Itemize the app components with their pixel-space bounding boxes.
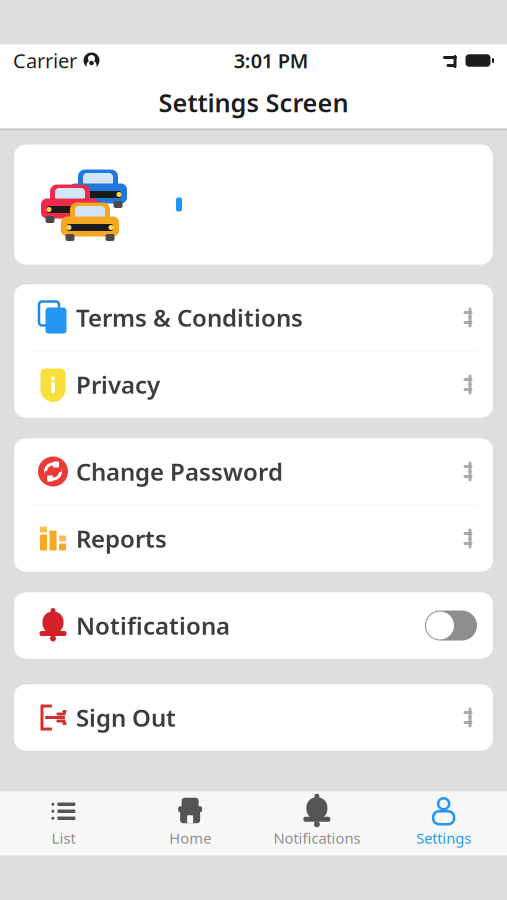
staticText: Home xyxy=(169,828,211,848)
button[interactable]: Terms & Conditions xyxy=(14,284,493,350)
button[interactable]: Privacy xyxy=(14,351,493,417)
staticText: List xyxy=(51,828,75,848)
button[interactable]: List xyxy=(0,792,127,854)
button[interactable]: Change Password xyxy=(14,438,493,504)
staticText: 3:01 PM xyxy=(234,47,309,74)
staticText: Reports xyxy=(76,523,167,554)
button[interactable]: Notificationa xyxy=(14,592,493,658)
button[interactable]: Home xyxy=(127,792,254,854)
button[interactable]: Notifications xyxy=(253,792,380,854)
staticText: Privacy xyxy=(76,369,160,400)
staticText: Settings xyxy=(416,828,471,848)
button[interactable]: Settings xyxy=(380,792,507,854)
staticText: Notificationa xyxy=(76,610,230,641)
staticText: Carrier xyxy=(13,47,77,74)
staticText: Change Password xyxy=(76,456,283,487)
staticText: Settings Screen xyxy=(158,86,348,119)
button[interactable]: Sign Out xyxy=(14,684,493,750)
staticText: Notifications xyxy=(273,828,360,848)
staticText: Terms & Conditions xyxy=(76,302,303,333)
staticText: Sign Out xyxy=(76,702,176,733)
button[interactable]: Reports xyxy=(14,505,493,571)
